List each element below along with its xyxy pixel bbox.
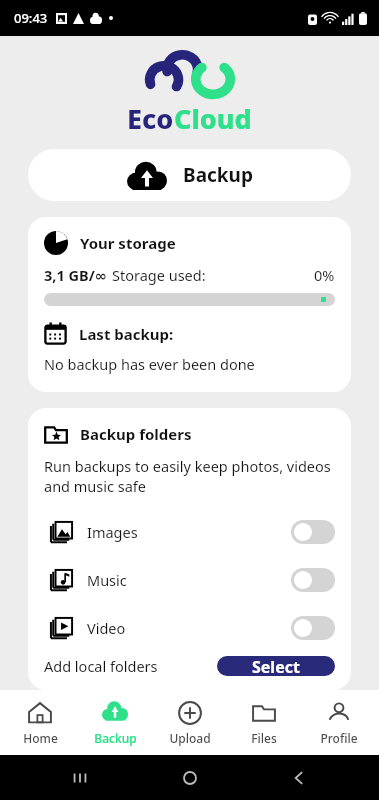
button[interactable]: Back (269, 755, 329, 800)
button[interactable]: Recents (50, 755, 110, 800)
button[interactable]: Music (44, 556, 335, 604)
staticText: Video (87, 618, 126, 638)
staticText: 09:43 (14, 9, 48, 27)
button[interactable]: Select (217, 656, 335, 676)
staticText: Profile (320, 730, 358, 746)
button[interactable]: Files (229, 694, 299, 752)
staticText: Cloud (174, 100, 252, 137)
button[interactable]: Home (160, 755, 220, 800)
staticText: Add local folders (44, 656, 158, 676)
staticText: No backup has ever been done (44, 354, 255, 374)
staticText: 0% (314, 265, 335, 285)
button[interactable]: Images (44, 508, 335, 556)
staticText: Storage used: (112, 265, 206, 285)
button[interactable]: Backup (80, 694, 150, 752)
button[interactable]: Video (44, 604, 335, 652)
staticText: Backup (183, 162, 253, 188)
staticText: 3,1 GB/∞ (44, 265, 107, 285)
staticText: Last backup: (79, 324, 174, 344)
staticText: Music (87, 570, 127, 590)
staticText: Backup folders (80, 424, 192, 444)
button[interactable]: Upload (155, 694, 225, 752)
button[interactable]: Profile (304, 694, 374, 752)
staticText: Eco (127, 100, 174, 137)
staticText: Upload (169, 730, 211, 746)
staticText: Backup (94, 730, 137, 746)
button[interactable]: Backup (28, 149, 351, 201)
staticText: Images (87, 522, 138, 542)
staticText: Select (252, 656, 300, 676)
staticText: Files (251, 730, 277, 746)
staticText: Your storage (80, 233, 176, 253)
button[interactable]: Home (5, 694, 75, 752)
staticText: Home (23, 730, 58, 746)
staticText: Run backups to easily keep photos, video… (44, 456, 335, 496)
